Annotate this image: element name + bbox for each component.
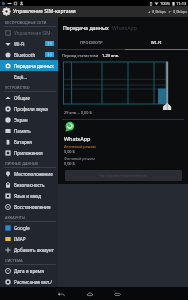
staticText: Фоновый режим [64,156,95,161]
button[interactable]: Общие [0,92,58,103]
staticText: Ещё... [14,74,27,80]
button[interactable]: Язык и ввод [0,190,58,201]
staticText: БЕСПРОВОДНЫЕ СЕТИ [5,20,47,25]
staticText: Передача данных [63,24,109,31]
staticText: WhatsApp [64,135,91,142]
staticText: Передача данных [14,63,54,69]
staticText: ЛИЧНЫЕ ДАННЫЕ [5,161,39,166]
staticText: Профили звука [14,106,48,112]
button[interactable]: Back [55,288,66,299]
button[interactable]: Приложения [0,147,58,158]
staticText: Местоположение [14,171,53,177]
button[interactable]: Восстановление [0,201,58,212]
staticText: 11:13 [176,1,187,6]
staticText: Wi-Fi [14,41,25,47]
button[interactable]: Управление SIM-картами [2,7,76,16]
staticText: 0,00 Б [64,161,75,166]
button[interactable]: Местоположение [0,168,58,179]
staticText: СИСТЕМА [5,258,23,263]
button[interactable]: Home [84,288,95,299]
button[interactable]: IMAP [0,233,58,244]
button[interactable]: Дата и время [0,265,58,276]
button[interactable]: Ещё... [0,71,58,82]
staticText: Дата и время [14,268,44,274]
staticText: Восстановление [14,204,51,210]
staticText: 0,00 Б [64,149,75,154]
staticText: Память [14,128,31,134]
staticText: Управление SIM-картами [13,8,76,15]
staticText: Батарея [14,139,32,145]
button[interactable]: Wi-Fi [0,38,58,49]
button[interactable]: Передача данных [0,60,58,71]
staticText: 29 янв. – 0,00 Б [64,110,92,115]
staticText: 0,0kbps [173,9,187,14]
button[interactable]: Безопасность [0,179,58,190]
staticText: Управление SIM- [14,30,52,36]
button[interactable]: Bluetooth [0,49,58,60]
button[interactable]: Расписание вкл./ [0,276,58,287]
staticText: Период статистики [62,53,99,58]
staticText: ПРОСМОТР [80,40,103,45]
staticText: Добавить аккаунт [14,247,54,253]
staticText: Язык и ввод [14,193,41,199]
staticText: Приложения [14,150,43,156]
staticText: УСТРОЙСТВО [5,85,30,90]
button[interactable]: Батарея [0,136,58,147]
staticText: Общие [14,95,30,101]
button[interactable]: ПРОСМОТР [58,36,125,50]
staticText: Активный режим [64,144,96,149]
button[interactable]: Добавить аккаунт [0,244,58,255]
staticText: Экран [14,117,28,123]
button[interactable]: Профили звука [0,103,58,114]
staticText: WI-FI [151,40,162,45]
button[interactable]: WI-FI [125,36,188,50]
button[interactable]: Управление SIM- [0,27,58,38]
staticText: АККАУНТЫ [5,215,26,220]
staticText: WhatsApp [112,24,137,31]
button[interactable]: Экран [0,114,58,125]
button[interactable]: Google [0,222,58,233]
button[interactable]: Память [0,125,58,136]
staticText: Google [14,225,30,231]
staticText: Bluetooth [14,52,36,58]
staticText: Безопасность [14,182,45,188]
staticText: IMAP [14,236,26,242]
button[interactable]: Recent apps [112,288,123,299]
staticText: 1-29 янв. [102,53,119,58]
staticText: 100% [160,1,171,6]
staticText: Настройки приложения [99,173,148,179]
staticText: Расписание вкл./ [14,279,53,285]
staticText: 0,0kbps [152,9,166,14]
